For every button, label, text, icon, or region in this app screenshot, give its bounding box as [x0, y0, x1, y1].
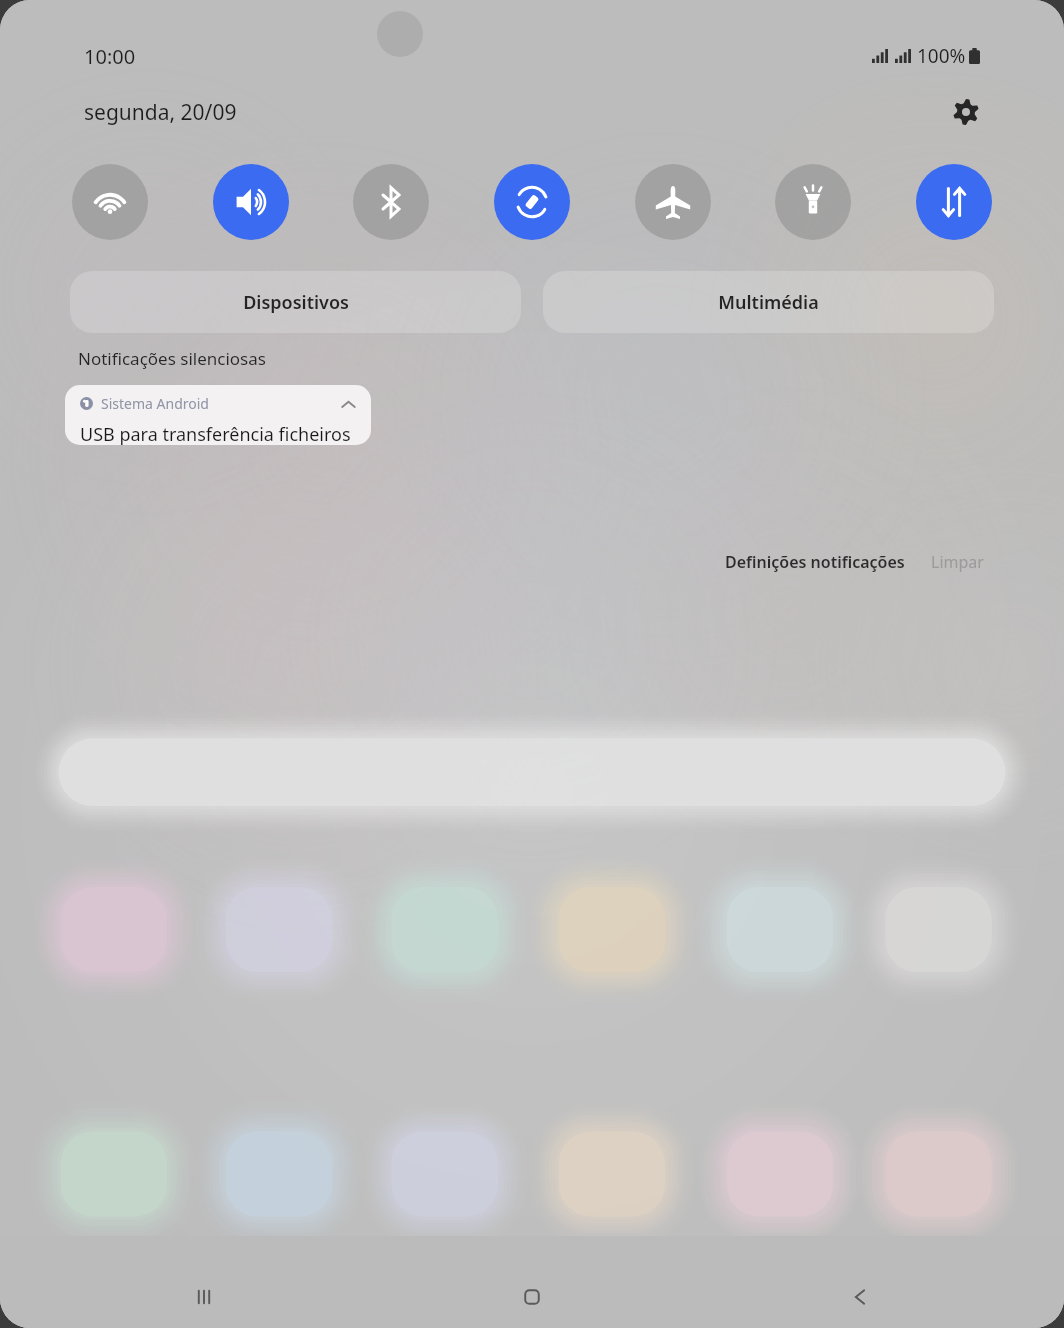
button[interactable]: Reduzir	[333, 389, 363, 419]
button[interactable]: Rotação automática	[494, 164, 570, 240]
button[interactable]: Wi-Fi	[72, 164, 148, 240]
staticText: 100%	[917, 43, 966, 69]
button[interactable]: Definições	[944, 90, 988, 134]
button[interactable]: Dispositivos	[70, 271, 521, 333]
button[interactable]: Definições notificações	[719, 545, 911, 579]
staticText: Definições notificações	[725, 551, 905, 573]
staticText: Multimédia	[718, 290, 819, 315]
staticText: Sistema Android	[101, 394, 209, 413]
button[interactable]: Dados móveis	[916, 164, 992, 240]
button[interactable]: Modo de voo	[635, 164, 711, 240]
staticText: Limpar	[931, 551, 984, 573]
staticText: Notificações silenciosas	[78, 347, 266, 370]
button[interactable]: Bluetooth	[353, 164, 429, 240]
button[interactable]: Som	[213, 164, 289, 240]
button[interactable]: Lanterna	[775, 164, 851, 240]
button[interactable]: Multimédia	[543, 271, 994, 333]
button[interactable]: Início	[506, 1274, 558, 1320]
staticText: segunda, 20/09	[84, 98, 237, 127]
button[interactable]: Limpar	[925, 545, 990, 579]
staticText: 10:00	[84, 43, 136, 70]
button[interactable]: Retroceder	[834, 1274, 886, 1320]
button[interactable]: Recentes	[178, 1274, 230, 1320]
staticText: USB para transferência ficheiros	[80, 422, 351, 445]
staticText: Dispositivos	[243, 290, 349, 315]
button[interactable]: Sistema Android	[65, 385, 371, 445]
